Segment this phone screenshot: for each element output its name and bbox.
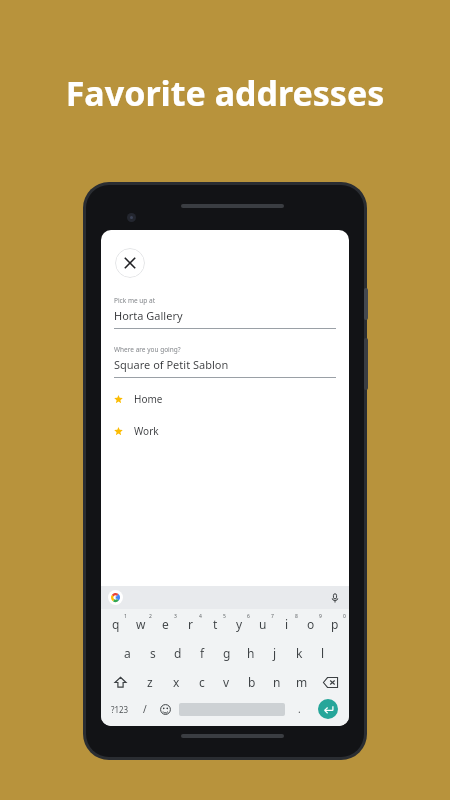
button[interactable]: . <box>288 698 310 720</box>
button[interactable]: ?123 <box>105 698 135 720</box>
staticText: 3 <box>174 613 177 620</box>
staticText: 4 <box>199 613 202 620</box>
staticText: q <box>112 616 120 632</box>
staticText: 9 <box>319 613 322 620</box>
staticText: e <box>162 616 169 632</box>
button[interactable]: / <box>135 698 154 720</box>
button[interactable]: Enter <box>310 698 345 720</box>
staticText: 5 <box>223 613 226 620</box>
button[interactable]: Work <box>114 424 336 438</box>
staticText: j <box>273 645 277 661</box>
button[interactable]: j <box>263 642 287 664</box>
button[interactable]: k <box>287 642 311 664</box>
staticText: Square of Petit Sablon <box>114 357 229 372</box>
button[interactable]: r <box>178 613 203 635</box>
button[interactable]: Backspace <box>314 671 347 693</box>
staticText: . <box>298 702 301 716</box>
staticText: Work <box>134 424 159 438</box>
staticText: r <box>188 616 193 632</box>
staticText: w <box>136 616 146 632</box>
button[interactable]: n <box>264 671 289 693</box>
staticText: 7 <box>271 613 274 620</box>
button[interactable]: Emoji <box>154 698 176 720</box>
staticText: p <box>331 616 339 632</box>
button[interactable]: q <box>103 613 128 635</box>
button[interactable]: m <box>289 671 314 693</box>
button[interactable]: e <box>153 613 178 635</box>
button[interactable]: Voice input <box>329 592 341 604</box>
staticText: b <box>248 674 256 690</box>
staticText: u <box>259 616 267 632</box>
button[interactable]: Close <box>115 248 145 278</box>
button[interactable]: t <box>203 613 227 635</box>
staticText: Favorite addresses <box>0 70 450 116</box>
staticText: 1 <box>124 613 127 620</box>
button[interactable]: d <box>165 642 190 664</box>
button[interactable]: i <box>275 613 299 635</box>
staticText: g <box>223 645 231 661</box>
staticText: Horta Gallery <box>114 308 183 323</box>
staticText: 2 <box>149 613 152 620</box>
button[interactable]: x <box>163 671 189 693</box>
staticText: Pick me up at <box>114 296 156 305</box>
button[interactable]: Where are you going? <box>114 345 336 378</box>
button[interactable]: Home <box>114 392 336 406</box>
button[interactable]: Pick me up at <box>114 296 336 329</box>
staticText: z <box>147 674 153 690</box>
staticText: o <box>307 616 315 632</box>
button[interactable]: f <box>190 642 215 664</box>
staticText: a <box>124 645 131 661</box>
staticText: 6 <box>247 613 250 620</box>
staticText: m <box>296 674 308 690</box>
button[interactable]: y <box>227 613 251 635</box>
button[interactable]: z <box>137 671 163 693</box>
button[interactable]: o <box>299 613 323 635</box>
staticText: f <box>200 645 205 661</box>
staticText: i <box>285 616 289 632</box>
staticText: n <box>273 674 281 690</box>
staticText: k <box>296 645 303 661</box>
button[interactable]: a <box>115 642 140 664</box>
staticText: s <box>150 645 156 661</box>
button[interactable]: w <box>128 613 153 635</box>
staticText: Where are you going? <box>114 345 181 354</box>
staticText: 8 <box>295 613 298 620</box>
staticText: d <box>174 645 182 661</box>
staticText: 0 <box>343 613 346 620</box>
staticText: / <box>143 702 147 716</box>
button[interactable]: s <box>140 642 165 664</box>
button[interactable]: g <box>215 642 239 664</box>
button[interactable]: c <box>189 671 214 693</box>
staticText: v <box>223 674 230 690</box>
button[interactable]: b <box>239 671 264 693</box>
button[interactable]: Google <box>108 590 123 605</box>
staticText: Home <box>134 392 163 406</box>
button[interactable]: p <box>323 613 347 635</box>
staticText: h <box>247 645 255 661</box>
staticText: t <box>213 616 218 632</box>
button[interactable]: l <box>311 642 335 664</box>
staticText: y <box>236 616 243 632</box>
button[interactable]: h <box>239 642 263 664</box>
button[interactable]: v <box>214 671 239 693</box>
staticText: ?123 <box>111 704 129 715</box>
staticText: x <box>173 674 180 690</box>
button[interactable]: u <box>251 613 275 635</box>
staticText: l <box>321 645 325 661</box>
staticText: c <box>199 674 205 690</box>
button[interactable]: Shift <box>103 671 137 693</box>
